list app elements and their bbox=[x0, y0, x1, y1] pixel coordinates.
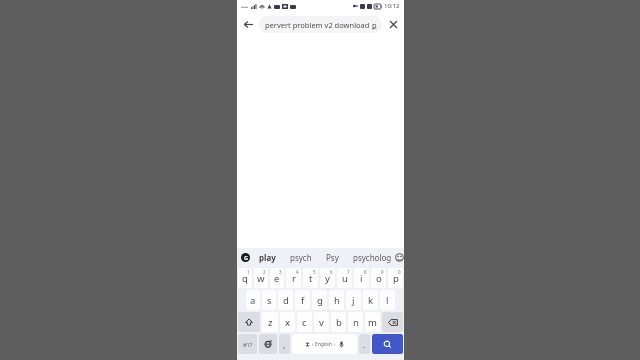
staticText: k bbox=[368, 294, 374, 307]
button[interactable]: Search bbox=[372, 334, 403, 354]
button[interactable]: j bbox=[346, 290, 361, 310]
button[interactable]: , bbox=[279, 334, 290, 354]
staticText: 7 bbox=[347, 269, 350, 275]
button[interactable]: t bbox=[303, 268, 318, 288]
staticText: a bbox=[250, 294, 256, 307]
staticText: › bbox=[334, 341, 336, 348]
staticText: psycholog bbox=[353, 252, 392, 263]
button[interactable]: psycholog bbox=[351, 252, 394, 263]
button[interactable]: psych bbox=[288, 252, 314, 263]
staticText: 3 bbox=[279, 269, 282, 275]
staticText: G bbox=[244, 254, 248, 261]
button[interactable]: c bbox=[297, 312, 312, 332]
button[interactable]: play bbox=[257, 252, 278, 263]
button[interactable]: l bbox=[380, 290, 395, 310]
staticText: w bbox=[257, 272, 265, 285]
staticText: x bbox=[285, 316, 291, 329]
staticText: , bbox=[283, 339, 286, 350]
staticText: s bbox=[267, 294, 272, 307]
button[interactable]: f bbox=[295, 290, 310, 310]
staticText: b bbox=[336, 316, 342, 329]
staticText: z bbox=[268, 316, 273, 329]
staticText: d bbox=[283, 294, 289, 307]
staticText: #1? bbox=[243, 341, 253, 348]
staticText: m bbox=[368, 316, 377, 329]
button[interactable]: m bbox=[365, 312, 380, 332]
staticText: f bbox=[301, 294, 305, 307]
button[interactable]: v bbox=[314, 312, 329, 332]
button[interactable]: Emoji bbox=[394, 250, 404, 264]
button[interactable]: n bbox=[348, 312, 363, 332]
button[interactable]: e bbox=[270, 268, 284, 288]
button[interactable]: h bbox=[329, 290, 344, 310]
staticText: r bbox=[292, 272, 296, 285]
button[interactable]: Back bbox=[237, 13, 259, 35]
staticText: ‹ bbox=[312, 341, 314, 348]
staticText: h bbox=[334, 294, 340, 307]
button[interactable]: z bbox=[262, 312, 278, 332]
button[interactable]: Shift bbox=[238, 312, 260, 332]
button[interactable]: . bbox=[359, 334, 370, 354]
button[interactable]: d bbox=[278, 290, 293, 310]
button[interactable]: s bbox=[262, 290, 276, 310]
staticText: psy bbox=[372, 20, 376, 30]
staticText: 6 bbox=[330, 269, 333, 275]
staticText: 1 bbox=[247, 269, 250, 275]
button[interactable]: #1? bbox=[238, 334, 257, 354]
staticText: u bbox=[342, 272, 348, 285]
staticText: n bbox=[353, 316, 359, 329]
staticText: p bbox=[393, 272, 399, 285]
button[interactable]: Search engine bbox=[241, 253, 250, 262]
button[interactable]: r bbox=[286, 268, 301, 288]
staticText: 10:12 bbox=[384, 2, 400, 10]
button[interactable]: Change language bbox=[259, 334, 277, 354]
staticText: 5 bbox=[313, 269, 316, 275]
staticText: v bbox=[319, 316, 324, 329]
button[interactable]: u bbox=[337, 268, 352, 288]
staticText: o bbox=[376, 272, 382, 285]
button[interactable]: p bbox=[388, 268, 403, 288]
staticText: l bbox=[386, 294, 389, 307]
staticText: c bbox=[302, 316, 307, 329]
button[interactable]: g bbox=[312, 290, 327, 310]
staticText: 0 bbox=[398, 269, 401, 275]
button[interactable]: Psy bbox=[324, 252, 341, 263]
staticText: t bbox=[309, 272, 313, 285]
staticText: 4 bbox=[296, 269, 299, 275]
button[interactable]: o bbox=[371, 268, 386, 288]
staticText: e bbox=[274, 272, 280, 285]
staticText: Psy bbox=[326, 252, 339, 263]
staticText: i bbox=[360, 272, 363, 285]
staticText: j bbox=[352, 294, 355, 307]
button[interactable]: x bbox=[280, 312, 295, 332]
button[interactable]: a bbox=[246, 290, 260, 310]
button[interactable]: Clear bbox=[382, 13, 404, 35]
staticText: 9 bbox=[381, 269, 384, 275]
button[interactable]: i bbox=[354, 268, 369, 288]
staticText: 2 bbox=[263, 269, 266, 275]
button[interactable]: w bbox=[254, 268, 268, 288]
button[interactable]: q bbox=[238, 268, 252, 288]
button[interactable]: Space bbox=[292, 334, 357, 354]
staticText: pervert problem v2 download bbox=[265, 20, 372, 30]
staticText: psych bbox=[290, 252, 312, 263]
button[interactable]: k bbox=[363, 290, 378, 310]
staticText: g bbox=[317, 294, 323, 307]
button[interactable]: pervert problem v2 download bbox=[259, 16, 382, 33]
staticText: y bbox=[325, 272, 330, 285]
staticText: play bbox=[259, 252, 276, 263]
staticText: . bbox=[363, 339, 366, 350]
button[interactable]: Backspace bbox=[382, 312, 403, 332]
button[interactable]: y bbox=[320, 268, 335, 288]
staticText: 8 bbox=[364, 269, 367, 275]
staticText: q bbox=[242, 272, 248, 285]
staticText: English bbox=[315, 341, 333, 348]
button[interactable]: b bbox=[331, 312, 346, 332]
